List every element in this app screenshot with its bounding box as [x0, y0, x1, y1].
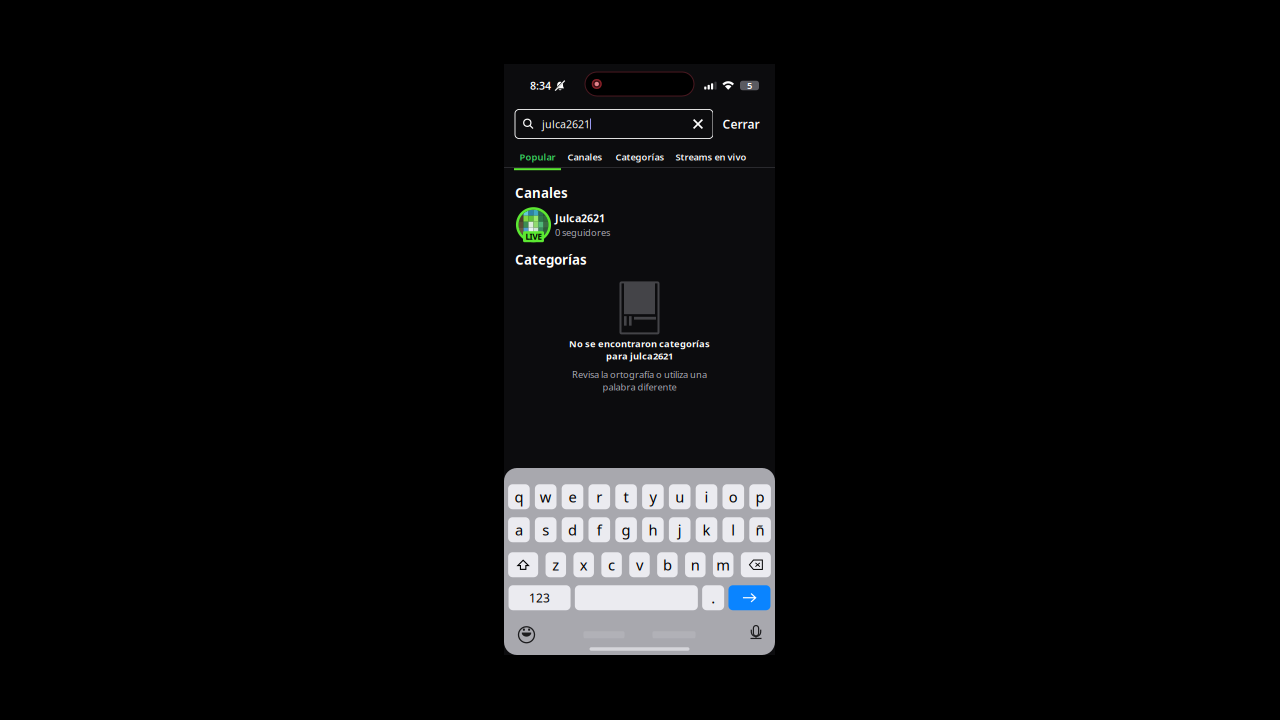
- staticText: Revisa la ortografía o utiliza una: [572, 368, 707, 381]
- button[interactable]: Popular: [514, 146, 561, 167]
- button[interactable]: p: [749, 484, 771, 509]
- staticText: y: [649, 487, 656, 506]
- button[interactable]: LIVE: [504, 205, 775, 245]
- staticText: Popular: [519, 151, 555, 163]
- staticText: t: [624, 487, 629, 506]
- staticText: .: [711, 588, 715, 607]
- staticText: z: [552, 555, 559, 574]
- staticText: e: [568, 487, 576, 506]
- button[interactable]: k: [696, 517, 717, 542]
- button[interactable]: w: [535, 484, 556, 509]
- button[interactable]: b: [657, 552, 678, 577]
- staticText: s: [542, 520, 549, 539]
- staticText: LIVE: [525, 231, 541, 242]
- button[interactable]: 123: [509, 585, 571, 610]
- staticText: Categorías: [615, 151, 664, 163]
- staticText: No se encontraron categorías: [569, 337, 710, 350]
- button[interactable]: e: [562, 484, 583, 509]
- button[interactable]: h: [642, 517, 664, 542]
- button[interactable]: n: [685, 552, 705, 577]
- staticText: q: [514, 487, 523, 506]
- staticText: julca2621: [542, 117, 590, 131]
- staticText: b: [663, 555, 672, 574]
- button[interactable]: s: [535, 517, 556, 542]
- staticText: Canales: [567, 151, 602, 163]
- button[interactable]: d: [562, 517, 583, 542]
- button[interactable]: z: [545, 552, 566, 577]
- staticText: l: [731, 520, 735, 539]
- button[interactable]: x: [573, 552, 594, 577]
- button[interactable]: u: [669, 484, 690, 509]
- button[interactable]: j: [669, 517, 690, 542]
- staticText: a: [515, 520, 523, 539]
- staticText: para julca2621: [606, 350, 673, 362]
- staticText: x: [580, 555, 588, 574]
- staticText: r: [596, 487, 602, 506]
- staticText: Categorías: [515, 251, 587, 268]
- staticText: m: [716, 555, 730, 574]
- button[interactable]: [575, 585, 698, 610]
- staticText: i: [704, 487, 708, 506]
- button[interactable]: a: [508, 517, 530, 542]
- staticText: g: [622, 520, 631, 539]
- staticText: Canales: [515, 184, 568, 202]
- button[interactable]: o: [722, 484, 744, 509]
- button[interactable]: Delete: [741, 552, 771, 577]
- staticText: k: [702, 520, 710, 539]
- staticText: d: [568, 520, 577, 539]
- button[interactable]: l: [722, 517, 744, 542]
- staticText: palabra diferente: [602, 381, 676, 393]
- button[interactable]: y: [642, 484, 664, 509]
- staticText: 123: [529, 590, 550, 606]
- staticText: w: [540, 487, 552, 506]
- staticText: 0 seguidores: [555, 226, 610, 238]
- staticText: u: [675, 487, 684, 506]
- button[interactable]: Shift: [508, 552, 538, 577]
- staticText: ñ: [756, 520, 765, 539]
- button[interactable]: g: [615, 517, 637, 542]
- staticText: c: [608, 555, 615, 574]
- button[interactable]: c: [601, 552, 622, 577]
- button[interactable]: Streams en vivo: [671, 146, 751, 167]
- button[interactable]: .: [702, 585, 724, 610]
- staticText: h: [648, 520, 657, 539]
- button[interactable]: v: [629, 552, 650, 577]
- button[interactable]: Canales: [561, 146, 609, 167]
- button[interactable]: Return: [728, 585, 770, 610]
- button[interactable]: Dictate: [750, 626, 761, 643]
- button[interactable]: Categorías: [609, 146, 671, 167]
- button[interactable]: f: [588, 517, 610, 542]
- staticText: n: [691, 555, 700, 574]
- staticText: j: [678, 520, 682, 539]
- button[interactable]: Cerrar: [723, 109, 759, 138]
- staticText: 8:34: [530, 78, 551, 93]
- button[interactable]: m: [713, 552, 733, 577]
- button[interactable]: q: [508, 484, 530, 509]
- staticText: Streams en vivo: [675, 151, 746, 163]
- staticText: Cerrar: [722, 116, 759, 132]
- staticText: o: [729, 487, 738, 506]
- button[interactable]: Clear search: [688, 114, 708, 134]
- staticText: v: [636, 555, 643, 574]
- staticText: f: [597, 520, 602, 539]
- staticText: p: [756, 487, 765, 506]
- button[interactable]: i: [696, 484, 717, 509]
- staticText: Julca2621: [555, 211, 605, 225]
- button[interactable]: ñ: [749, 517, 771, 542]
- button[interactable]: r: [588, 484, 610, 509]
- staticText: 5: [747, 79, 752, 92]
- button[interactable]: Emoji: [517, 626, 535, 644]
- button[interactable]: t: [615, 484, 637, 509]
